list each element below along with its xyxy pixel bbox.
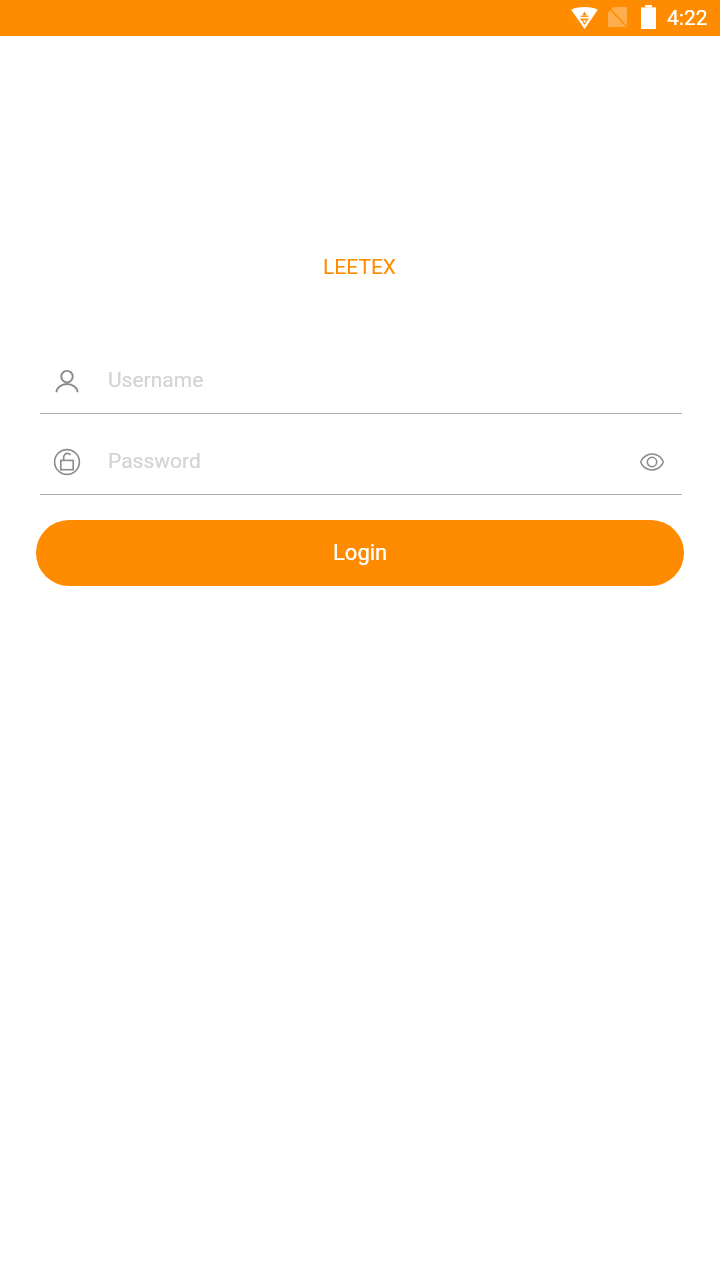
- button[interactable]: Show password: [637, 447, 667, 477]
- button[interactable]: Login: [36, 520, 684, 586]
- staticText: Username: [108, 368, 204, 393]
- staticText: LEETEX: [323, 255, 397, 280]
- staticText: 4:22: [667, 6, 708, 31]
- button[interactable]: Username: [40, 348, 682, 413]
- staticText: Login: [333, 540, 388, 566]
- staticText: Password: [108, 449, 201, 474]
- button[interactable]: Password: [40, 429, 682, 494]
